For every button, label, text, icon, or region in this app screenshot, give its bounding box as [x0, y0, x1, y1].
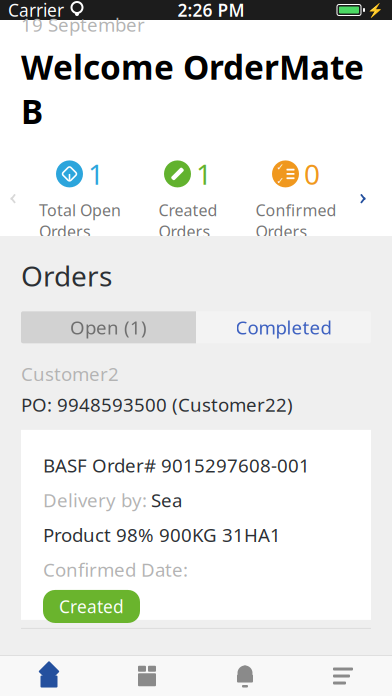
button[interactable]: 1: [26, 155, 134, 242]
staticText: Delivery by:: [43, 488, 147, 512]
staticText: Customer2: [21, 361, 119, 386]
staticText: ✓: [276, 162, 284, 172]
staticText: Confirmed Orders: [255, 199, 336, 242]
staticText: Confirmed Date:: [43, 557, 188, 582]
staticText: BASF Order# 9015297608-001: [43, 453, 310, 478]
staticText: Open (1): [70, 315, 147, 340]
button[interactable]: BASF Order# 9015297608-001: [21, 430, 371, 620]
staticText: Carrier: [8, 0, 64, 21]
button[interactable]: Expand: [0, 242, 392, 272]
staticText: 1: [196, 155, 212, 192]
staticText: Created Orders: [158, 199, 217, 242]
button[interactable]: Notifications: [196, 656, 294, 696]
staticText: Completed: [235, 315, 331, 340]
button[interactable]: 1: [134, 155, 242, 242]
staticText: 2:26 PM: [177, 0, 244, 21]
button[interactable]: ✓: [242, 155, 350, 242]
staticText: Created: [59, 595, 124, 618]
button[interactable]: Home: [0, 656, 98, 696]
button[interactable]: Orders: [98, 656, 196, 696]
button[interactable]: Open (1): [21, 311, 196, 343]
staticText: Welcome OrderMate B: [21, 45, 364, 133]
staticText: ✓: [276, 175, 284, 186]
staticText: 19 September: [21, 12, 145, 37]
button[interactable]: Menu: [294, 656, 392, 696]
staticText: Sea: [151, 488, 182, 512]
button[interactable]: Next: [350, 177, 376, 221]
staticText: 1: [88, 155, 104, 192]
staticText: 0: [304, 155, 320, 192]
staticText: Product 98% 900KG 31HA1: [43, 522, 281, 547]
button[interactable]: Completed: [196, 311, 371, 343]
staticText: PO: 9948593500 (Customer22): [21, 392, 293, 417]
staticText: Total Open Orders: [39, 199, 121, 242]
button[interactable]: Previous: [0, 177, 26, 221]
staticText: Orders: [21, 257, 112, 294]
staticText: ⚡: [367, 2, 384, 18]
